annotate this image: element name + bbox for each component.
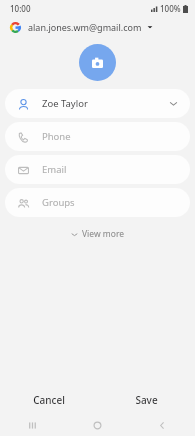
staticText: alan.jones.wm@gmail.com — [28, 21, 142, 33]
staticText: 100% — [160, 3, 181, 14]
button[interactable]: Zoe Taylor — [5, 89, 190, 118]
staticText: Cancel — [33, 393, 65, 407]
staticText: Save — [135, 393, 158, 407]
staticText: Groups — [42, 196, 75, 209]
button[interactable]: alan.jones.wm@gmail.com — [0, 16, 195, 38]
button[interactable]: View more — [63, 225, 133, 243]
button[interactable]: Add photo — [79, 44, 116, 81]
staticText: View more — [82, 228, 125, 240]
button[interactable]: Groups — [5, 188, 190, 217]
staticText: 10:00 — [10, 3, 31, 14]
button[interactable]: Email — [5, 155, 190, 184]
staticText: Email — [42, 163, 67, 176]
button[interactable]: Phone — [5, 122, 190, 151]
staticText: Zoe Taylor — [42, 97, 88, 110]
button[interactable]: Save — [97, 386, 195, 414]
button[interactable]: Back — [130, 414, 195, 436]
button[interactable]: Home — [65, 414, 130, 436]
button[interactable]: Recents — [0, 414, 65, 436]
staticText: Phone — [42, 130, 71, 143]
button[interactable]: Cancel — [0, 386, 97, 414]
